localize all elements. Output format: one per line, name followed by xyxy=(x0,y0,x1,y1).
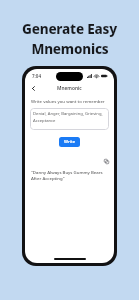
staticText: Generate Easy xyxy=(22,20,117,38)
staticText: Write values you want to remember xyxy=(31,98,105,104)
button[interactable]: Back xyxy=(28,83,38,93)
staticText: 7:04 xyxy=(32,73,41,79)
button[interactable]: Denial, Anger, Bargaining, Grieving, Acc… xyxy=(30,108,109,130)
staticText: "Danny Always Buys Gummy Bears After Acc… xyxy=(31,169,103,181)
staticText: Denial, Anger, Bargaining, Grieving, Acc… xyxy=(33,111,103,123)
staticText: Mnemonics xyxy=(31,40,109,58)
button[interactable]: Write xyxy=(59,137,80,147)
button[interactable]: Copy xyxy=(102,157,110,165)
staticText: Write xyxy=(64,139,76,145)
staticText: Mnemonic xyxy=(57,85,82,92)
